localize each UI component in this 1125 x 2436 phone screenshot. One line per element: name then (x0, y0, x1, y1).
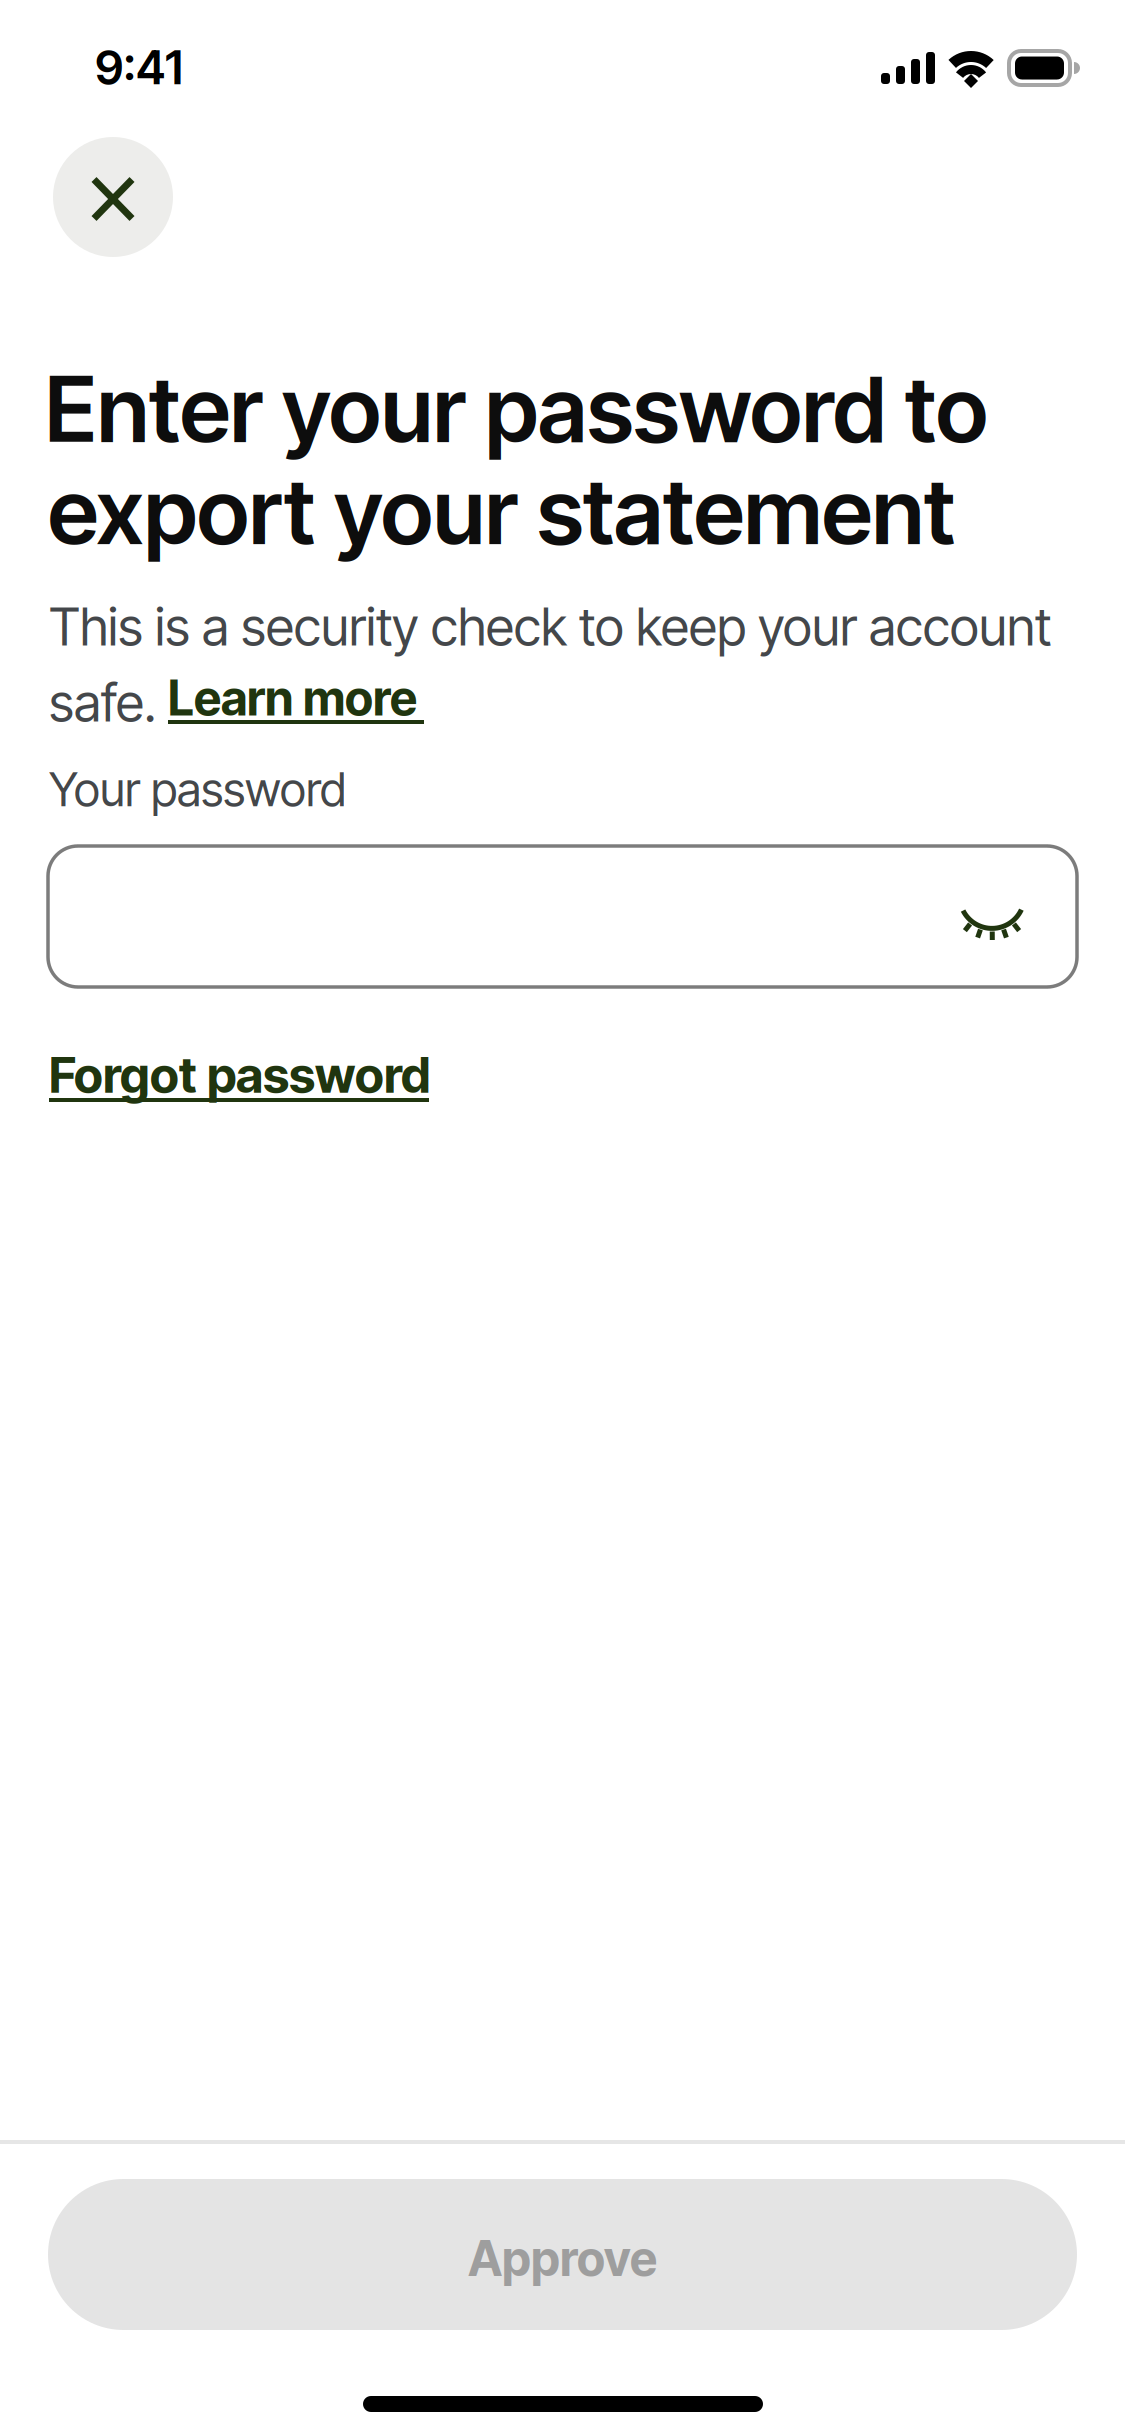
button[interactable]: Close (53, 137, 173, 257)
button[interactable]: Approve (48, 2179, 1077, 2330)
staticText: export your statement (48, 456, 955, 566)
staticText: Forgot password (49, 1045, 430, 1105)
button[interactable]: Show password (907, 846, 1077, 987)
staticText: Your password (49, 761, 346, 817)
staticText: Learn more (168, 669, 417, 727)
staticText: safe. (49, 671, 156, 734)
staticText: Enter your password to (45, 354, 988, 464)
button[interactable]: Learn more (168, 669, 428, 728)
staticText: 9:41 (95, 39, 183, 95)
staticText: This is a security check to keep your ac… (49, 595, 1051, 658)
button[interactable]: Forgot password (49, 1045, 433, 1106)
staticText: Approve (468, 2229, 657, 2288)
